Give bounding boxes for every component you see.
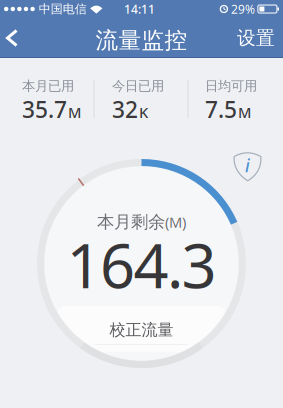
button[interactable]: i xyxy=(232,150,262,182)
staticText: 35.7 xyxy=(22,94,67,124)
staticText: 今日已用 xyxy=(112,78,164,94)
staticText: 7.5 xyxy=(205,94,237,124)
staticText: i xyxy=(245,154,250,177)
staticText: 设置 xyxy=(237,26,275,49)
staticText: 29% xyxy=(231,1,255,17)
staticText: 14:11 xyxy=(124,1,155,17)
staticText: 本月已用 xyxy=(22,78,74,94)
staticText: 日均可用 xyxy=(205,78,257,94)
staticText: 校正流量 xyxy=(109,320,173,340)
staticText: 流量监控 xyxy=(95,27,187,54)
staticText: M xyxy=(238,103,251,122)
staticText: 本月剩余 xyxy=(97,211,165,233)
staticText: 中国电信 xyxy=(39,2,87,16)
staticText: 32 xyxy=(112,94,138,124)
button[interactable] xyxy=(0,21,18,55)
button[interactable]: 设置 xyxy=(237,16,283,59)
staticText: (M) xyxy=(165,212,186,232)
staticText: 164.3 xyxy=(66,224,216,305)
button[interactable]: 校正流量 xyxy=(86,314,196,346)
staticText: K xyxy=(139,103,148,122)
staticText: M xyxy=(68,103,81,122)
